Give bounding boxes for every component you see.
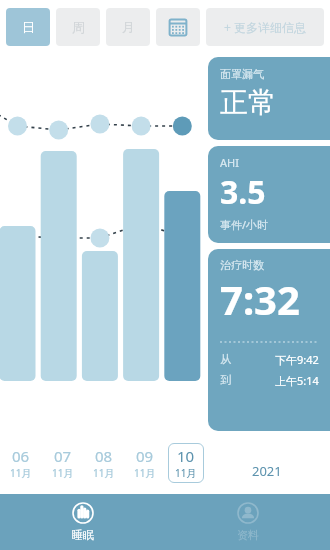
button[interactable]: + 更多详细信息 <box>206 8 324 46</box>
staticText: 从 <box>220 352 231 366</box>
staticText: 睡眠 <box>72 528 94 542</box>
staticText: 11月 <box>52 466 74 480</box>
button[interactable]: 资料 <box>165 494 330 550</box>
staticText: AHI <box>220 155 239 170</box>
staticText: 日 <box>22 19 35 35</box>
button[interactable]: 周 <box>56 8 100 46</box>
staticText: + 更多详细信息 <box>224 19 306 35</box>
staticText: 09 <box>136 446 154 466</box>
staticText: 到 <box>220 373 231 387</box>
staticText: 2021 <box>252 462 282 480</box>
staticText: 事件/小时 <box>220 217 269 232</box>
staticText: 11月 <box>93 466 115 480</box>
staticText: 3.5 <box>220 170 266 214</box>
staticText: 周 <box>72 19 85 35</box>
button[interactable]: 10 <box>175 446 197 480</box>
staticText: 月 <box>122 19 135 35</box>
staticText: 面罩漏气 <box>220 67 264 81</box>
button[interactable]: 月 <box>106 8 150 46</box>
button[interactable]: 日 <box>6 8 50 46</box>
button[interactable]: 面罩漏气 <box>208 57 330 140</box>
button[interactable]: 09 <box>134 446 156 480</box>
staticText: 11月 <box>175 466 197 480</box>
staticText: 上午5:14 <box>275 373 319 388</box>
staticText: 10 <box>177 446 195 466</box>
staticText: 资料 <box>237 528 259 542</box>
staticText: 11月 <box>134 466 156 480</box>
button[interactable]: 治疗时数 <box>208 249 330 431</box>
staticText: 06 <box>12 446 30 466</box>
button[interactable]: Calendar <box>156 8 200 46</box>
staticText: 正常 <box>220 85 276 120</box>
staticText: 11月 <box>10 466 32 480</box>
staticText: 下午9:42 <box>275 352 319 367</box>
button[interactable]: 睡眠 <box>0 494 165 550</box>
button[interactable]: AHI <box>208 146 330 243</box>
button[interactable]: 06 <box>10 446 32 480</box>
staticText: 治疗时数 <box>220 258 264 272</box>
button[interactable]: 08 <box>93 446 115 480</box>
staticText: 07 <box>54 446 72 466</box>
staticText: 7:32 <box>220 272 300 326</box>
staticText: 08 <box>95 446 113 466</box>
button[interactable]: 07 <box>52 446 74 480</box>
